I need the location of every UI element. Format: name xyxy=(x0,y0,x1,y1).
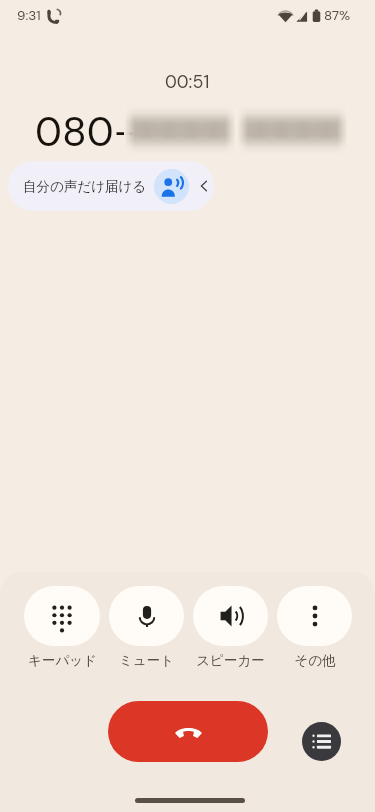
staticText: スピーカー xyxy=(196,652,265,669)
button[interactable]: Call log xyxy=(302,722,341,761)
staticText: その他 xyxy=(294,652,336,669)
button[interactable]: キーパッド xyxy=(24,586,100,669)
staticText: 080- xyxy=(35,105,136,158)
button[interactable]: 自分の声だけ届ける xyxy=(8,161,214,211)
button[interactable]: End call xyxy=(108,701,268,762)
staticText: キーパッド xyxy=(28,652,97,669)
staticText: ミュート xyxy=(119,652,174,669)
staticText: 87% xyxy=(324,7,351,25)
button[interactable]: その他 xyxy=(277,586,352,669)
button[interactable]: スピーカー xyxy=(193,586,268,669)
staticText: 00:51 xyxy=(165,70,210,93)
button[interactable]: ミュート xyxy=(109,586,184,669)
staticText: 9:31 xyxy=(17,7,41,25)
staticText: 自分の声だけ届ける xyxy=(23,178,147,195)
